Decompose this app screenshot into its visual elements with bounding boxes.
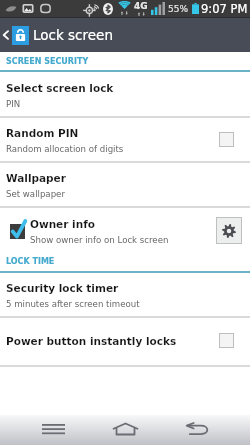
button[interactable]: Select screen lock xyxy=(0,72,250,116)
button[interactable]: Wallpaper xyxy=(0,163,250,206)
button[interactable]: Power button instantly locks xyxy=(0,318,250,365)
button[interactable]: Random PIN xyxy=(0,118,250,161)
button[interactable]: Owner info settings xyxy=(216,217,242,244)
other: Navigate up xyxy=(1,29,10,41)
staticText: 55% xyxy=(168,4,189,14)
staticText: LOCK TIME xyxy=(6,257,55,266)
staticText: Set wallpaper xyxy=(6,189,65,199)
button[interactable]: Menu xyxy=(17,415,89,442)
button[interactable]: Security lock timer xyxy=(0,273,250,316)
staticText: Random allocation of digits xyxy=(6,144,124,154)
staticText: 5 minutes after screen timeout xyxy=(6,299,140,309)
button[interactable]: Owner info xyxy=(0,208,250,252)
staticText: 9:07 PM xyxy=(201,2,248,15)
button[interactable]: Back xyxy=(161,415,233,442)
button[interactable]: Navigate up xyxy=(0,18,250,52)
staticText: Show owner info on Lock screen xyxy=(30,235,169,245)
button[interactable]: Home xyxy=(89,415,161,442)
staticText: PIN xyxy=(6,99,21,109)
staticText: Security lock timer xyxy=(6,282,119,294)
staticText: Owner info xyxy=(30,218,95,230)
staticText: 4G xyxy=(134,1,148,10)
staticText: Wallpaper xyxy=(6,172,66,184)
staticText: Select screen lock xyxy=(6,82,114,94)
staticText: SCREEN SECURITY xyxy=(6,57,89,66)
staticText: Lock screen xyxy=(33,27,113,43)
staticText: Random PIN xyxy=(6,127,79,139)
staticText: Power button instantly locks xyxy=(6,335,177,347)
